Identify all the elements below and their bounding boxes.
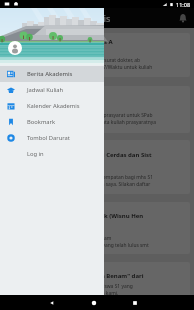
button[interactable]: Tombol Darurat (0, 130, 104, 146)
staticText: Lowongan Asisten Riset "Sistem Benam" da… (9, 272, 144, 280)
staticText: Pengumuman Penting Akademis A (9, 38, 113, 46)
staticText: Sistem Benam" dengan ini membuka kesempa… (9, 174, 153, 188)
button[interactable]: Lowongan Asisten Riset "Piranti Cerdas d… (4, 140, 190, 194)
staticText: Berita Akademis (40, 12, 111, 24)
staticText: Jadwal Kuliah (27, 86, 64, 94)
button[interactable]: Pengumuman Penting Akademis A (4, 33, 190, 77)
staticText: Log in (27, 150, 44, 158)
staticText: Diberitahukan kepada seluruh mhs program… (9, 235, 149, 249)
button[interactable]: Notifications (176, 11, 190, 25)
button[interactable]: Home (88, 297, 100, 309)
button[interactable]: Bookmark (0, 114, 104, 130)
staticText: Dengan ini diberitahukan kepada bahwa pr… (9, 112, 156, 126)
button[interactable]: Berita Akademis (0, 66, 104, 82)
button[interactable]: Kalender Akademis (0, 98, 104, 114)
button[interactable]: Back (46, 297, 58, 309)
button[interactable]: Log in (0, 146, 104, 162)
button[interactable]: Lowongan Asisten Riset "Sistem Benam" da… (4, 262, 190, 302)
button[interactable]: Dengan ini diberitahukan kepada bahwa pr… (4, 86, 190, 133)
button[interactable]: Pengumuman Penting Akademik (Wisnu Hen (4, 202, 190, 254)
button[interactable]: Jadwal Kuliah (0, 82, 104, 98)
staticText: Diberitahukan kepada mhs melampirkan sur… (9, 57, 153, 71)
staticText: Dibuka kesempatan magang bagi mahasiswa … (9, 283, 133, 297)
staticText: Tombol Darurat (27, 134, 70, 142)
staticText: Kalender Akademis (27, 102, 80, 110)
staticText: Lowongan Asisten Riset "Piranti Cerdas d… (9, 151, 152, 159)
staticText: Berita Akademis (27, 70, 73, 78)
button[interactable]: Recents (129, 297, 141, 309)
staticText: Bookmark (27, 118, 56, 126)
staticText: Pengumuman Penting Akademik (Wisnu Hen (9, 212, 144, 220)
staticText: 11:08 (176, 1, 191, 8)
